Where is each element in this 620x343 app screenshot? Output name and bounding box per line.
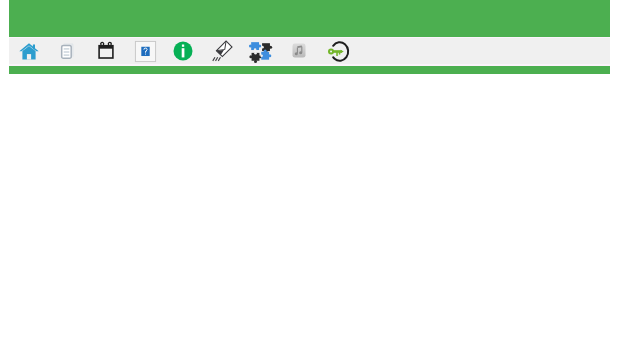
button[interactable]: Extensions	[241, 38, 279, 64]
button[interactable]: Music	[280, 38, 318, 64]
button[interactable]: History	[319, 38, 357, 64]
button[interactable]: Calendar	[87, 38, 125, 64]
button[interactable]: Notes	[48, 38, 86, 64]
button[interactable]: Home	[10, 38, 48, 64]
button[interactable]: Info	[164, 38, 202, 64]
button[interactable]: Image	[126, 38, 164, 64]
button[interactable]: Mail	[203, 38, 241, 64]
